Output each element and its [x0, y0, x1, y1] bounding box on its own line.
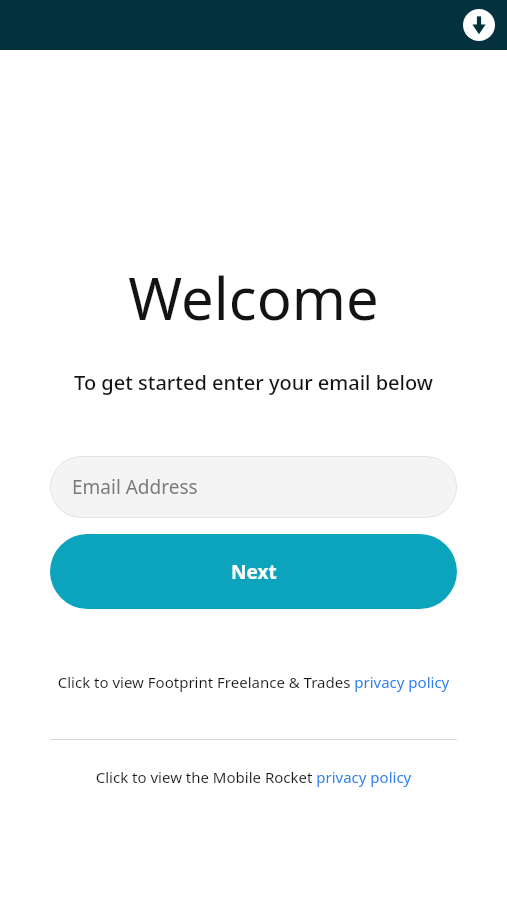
staticText: Next — [231, 559, 277, 585]
staticText: Click to view Footprint Freelance & Trad… — [50, 672, 457, 692]
button[interactable]: Click to view the Mobile Rocket privacy … — [50, 767, 457, 787]
button[interactable]: Click to view Footprint Freelance & Trad… — [50, 672, 457, 692]
button[interactable]: Next — [50, 534, 457, 609]
staticText: Welcome — [128, 258, 379, 337]
button[interactable]: Download — [457, 3, 501, 47]
staticText: To get started enter your email below — [74, 369, 433, 396]
staticText: Click to view the Mobile Rocket privacy … — [50, 767, 457, 787]
staticText: Email Address — [72, 474, 198, 500]
button[interactable]: Email Address — [50, 456, 457, 518]
